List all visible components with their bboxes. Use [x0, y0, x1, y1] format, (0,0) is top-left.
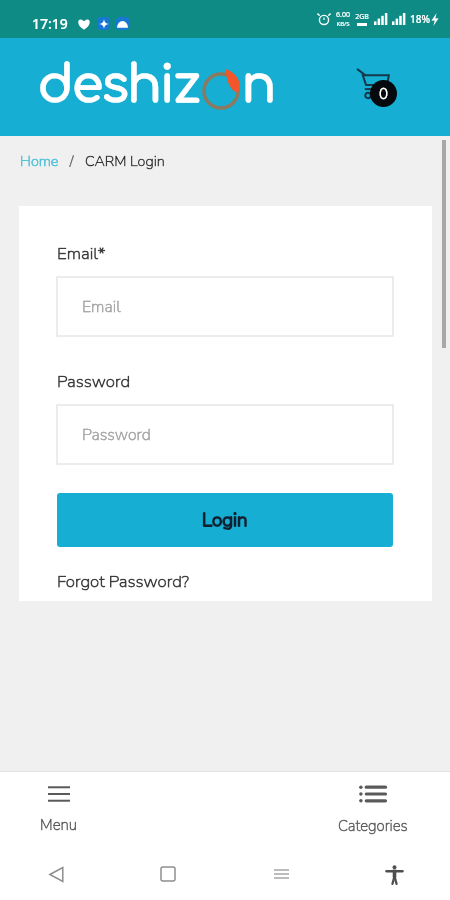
staticText: CARM Login [85, 151, 165, 171]
button[interactable]: Forgot Password? [57, 570, 190, 593]
staticText: 0 [379, 84, 389, 104]
staticText: Forgot Password? [57, 570, 190, 593]
button[interactable]: Menu [0, 772, 117, 848]
staticText: Categories [338, 816, 408, 836]
button[interactable]: Home [148, 854, 188, 894]
staticText: Login [202, 507, 248, 533]
button[interactable]: Login [57, 493, 393, 547]
staticText: Email [82, 296, 121, 318]
button[interactable]: Categories [314, 772, 431, 848]
staticText: Password [57, 370, 131, 393]
button[interactable]: Accessibility [374, 854, 414, 894]
staticText: / [59, 151, 85, 171]
staticText: Login [202, 507, 248, 533]
staticText: 6.00 [336, 10, 350, 20]
button[interactable]: Home [20, 151, 59, 171]
staticText: Menu [40, 815, 77, 835]
staticText: CARM Login [85, 151, 165, 171]
button[interactable]: Shopping cart [356, 66, 396, 108]
staticText: Home [20, 151, 59, 171]
staticText: Email* [57, 242, 106, 265]
staticText: 17:19 [32, 14, 68, 33]
staticText: Password [82, 424, 151, 446]
staticText: Email* [57, 242, 106, 265]
staticText: 2GB [355, 12, 369, 22]
staticText: KB/S [336, 20, 350, 28]
button[interactable]: Back [36, 854, 76, 894]
button[interactable]: Password [57, 405, 393, 464]
button[interactable]: Email [57, 277, 393, 336]
staticText: Password [57, 370, 131, 393]
staticText: Home [20, 151, 59, 171]
staticText: Forgot Password? [57, 570, 190, 593]
staticText: Menu [40, 815, 77, 835]
staticText: 18% [410, 12, 430, 26]
staticText: deshiz [38, 58, 200, 114]
staticText: Email [82, 296, 121, 318]
staticText: Password [82, 424, 151, 446]
staticText: Categories [338, 816, 408, 836]
staticText: n [242, 58, 275, 114]
staticText: / [59, 151, 85, 171]
button[interactable]: Recent apps [261, 854, 301, 894]
